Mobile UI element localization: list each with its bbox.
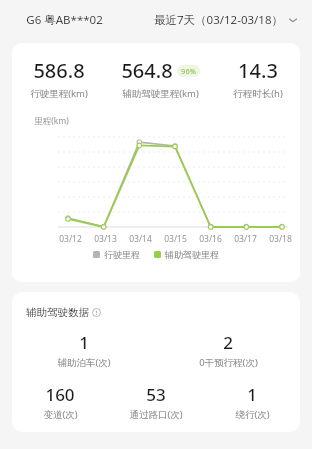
button[interactable]: 53 [108, 383, 204, 421]
staticText: 辅助驾驶数据 [26, 306, 89, 319]
staticText: 1 [247, 383, 257, 406]
staticText: 53 [146, 383, 166, 406]
button[interactable]: 586.8 [12, 57, 106, 100]
staticText: 辅助驾驶里程(km) [122, 87, 199, 100]
staticText: 通过路口(次) [129, 408, 183, 421]
button[interactable]: 1 [12, 331, 156, 369]
staticText: 辅助泊车(次) [57, 356, 111, 369]
staticText: 03/13 [94, 233, 117, 245]
staticText: 0干预行程(次) [199, 356, 258, 369]
staticText: 160 [45, 383, 75, 406]
staticText: 变道(次) [43, 408, 78, 421]
staticText: 最近7天（03/12-03/18） [154, 12, 283, 28]
staticText: 564.8 [121, 57, 173, 84]
button[interactable]: 2 [156, 331, 300, 369]
staticText: 绕行(次) [235, 408, 270, 421]
staticText: 03/16 [199, 233, 222, 245]
button[interactable]: 最近7天（03/12-03/18） [150, 8, 302, 32]
staticText: 586.8 [33, 57, 85, 84]
staticText: 行驶里程(km) [30, 87, 88, 100]
button[interactable]: 14.3 [215, 57, 300, 100]
staticText: 03/12 [59, 233, 82, 245]
staticText: G6 粤AB***02 [26, 12, 103, 28]
button[interactable]: 160 [12, 383, 108, 421]
staticText: 行程时长(h) [233, 87, 283, 100]
staticText: 里程(km) [34, 115, 69, 127]
staticText: 03/15 [164, 233, 187, 245]
staticText: 行驶里程 [104, 249, 140, 260]
staticText: 03/18 [269, 233, 292, 245]
staticText: 96% [181, 66, 196, 76]
staticText: 03/14 [129, 233, 152, 245]
button[interactable]: 辅助驾驶里程 [154, 249, 219, 260]
staticText: 辅助驾驶里程 [165, 249, 219, 260]
staticText: 14.3 [238, 57, 278, 84]
staticText: 2 [223, 331, 233, 354]
button[interactable]: 564.8 [106, 57, 215, 100]
button[interactable]: 行驶里程 [93, 249, 140, 260]
staticText: 03/17 [234, 233, 257, 245]
staticText: 1 [79, 331, 89, 354]
button[interactable]: Info [92, 308, 101, 317]
button[interactable]: 1 [204, 383, 300, 421]
other: Change date range [288, 15, 298, 25]
